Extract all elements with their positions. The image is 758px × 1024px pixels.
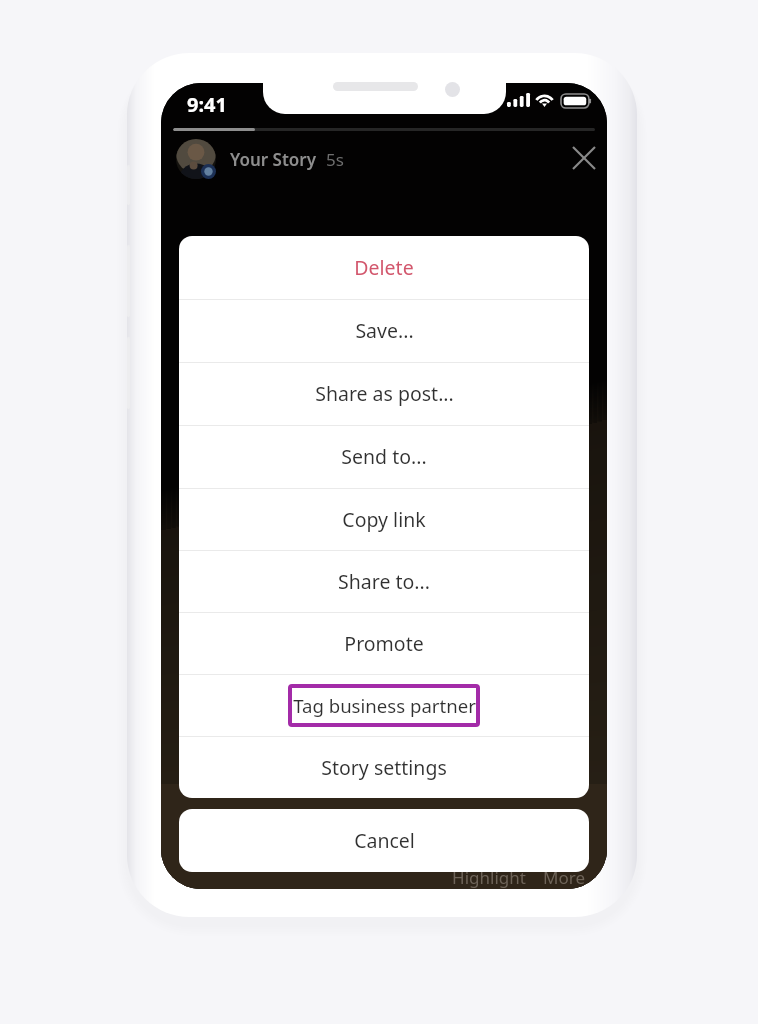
- staticText: Cancel: [354, 827, 415, 854]
- button[interactable]: Save...: [179, 299, 589, 362]
- staticText: Highlight: [452, 866, 526, 889]
- button[interactable]: Highlight: [452, 866, 526, 889]
- button[interactable]: Delete: [179, 236, 589, 299]
- button[interactable]: More: [543, 866, 585, 889]
- button[interactable]: Share to...: [179, 550, 589, 612]
- button[interactable]: Send to...: [179, 425, 589, 488]
- button[interactable]: Share as post...: [179, 362, 589, 425]
- staticText: Share to...: [338, 568, 430, 595]
- staticText: Tag business partner: [293, 693, 476, 718]
- staticText: Copy link: [342, 506, 426, 533]
- staticText: 9:41: [187, 91, 227, 118]
- staticText: Send to...: [341, 443, 427, 470]
- staticText: Save...: [355, 317, 414, 344]
- staticText: Delete: [354, 254, 414, 281]
- button[interactable]: Tag business partner: [179, 674, 589, 736]
- staticText: 5s: [326, 148, 344, 171]
- staticText: Promote: [344, 630, 424, 657]
- staticText: Story settings: [321, 754, 447, 781]
- staticText: More: [543, 866, 585, 889]
- button[interactable]: Your story avatar: [176, 139, 216, 179]
- button[interactable]: Close story: [562, 136, 606, 180]
- button[interactable]: Copy link: [179, 488, 589, 550]
- button[interactable]: Promote: [179, 612, 589, 674]
- staticText: Share as post...: [315, 380, 454, 407]
- button[interactable]: Story settings: [179, 736, 589, 798]
- button[interactable]: Cancel: [179, 809, 589, 872]
- staticText: Your Story: [230, 148, 316, 171]
